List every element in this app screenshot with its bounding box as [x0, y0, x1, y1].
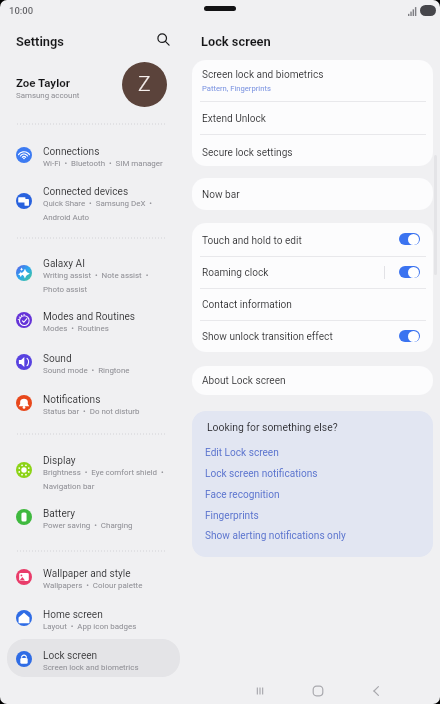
staticText: Edit Lock screen: [205, 447, 279, 459]
button[interactable]: Modes and Routines: [7, 300, 180, 338]
staticText: About Lock screen: [202, 375, 286, 387]
staticText: Looking for something else?: [207, 421, 338, 433]
staticText: Power saving • Charging: [43, 521, 133, 530]
staticText: Home screen: [43, 609, 103, 621]
staticText: Z: [138, 72, 151, 97]
staticText: Contact information: [202, 299, 292, 311]
button[interactable]: Connected devices: [7, 175, 180, 225]
button[interactable]: Battery: [7, 497, 180, 535]
button[interactable]: Connections: [7, 135, 180, 173]
staticText: Galaxy AI: [43, 258, 85, 270]
staticText: Quick Share • Samsung DeX • Android Auto: [43, 199, 152, 222]
button[interactable]: Touch and hold to edit: [399, 233, 420, 245]
button[interactable]: Display: [7, 444, 180, 494]
staticText: Extend Unlock: [202, 113, 266, 125]
staticText: Lock screen notifications: [205, 468, 318, 480]
staticText: Battery: [43, 508, 76, 520]
button[interactable]: Recents: [242, 676, 278, 704]
staticText: Display: [43, 455, 76, 467]
button[interactable]: Show alerting notifications only: [195, 525, 430, 544]
button[interactable]: Secure lock settings: [192, 138, 433, 166]
staticText: Writing assist • Note assist • Photo ass…: [43, 271, 149, 294]
button[interactable]: Edit Lock screen: [195, 442, 430, 461]
staticText: Modes • Routines: [43, 324, 109, 333]
staticText: Sound: [43, 353, 72, 365]
button[interactable]: Touch and hold to edit: [192, 226, 433, 258]
button[interactable]: Wallpaper and style: [7, 557, 180, 595]
button[interactable]: Home: [300, 676, 336, 704]
button[interactable]: Face recognition: [195, 484, 430, 503]
staticText: Fingerprints: [205, 510, 259, 522]
staticText: Lock screen: [201, 34, 271, 49]
button[interactable]: Screen lock and biometrics: [192, 60, 433, 101]
staticText: Screen lock and biometrics: [202, 69, 324, 81]
button[interactable]: About Lock screen: [192, 366, 433, 395]
staticText: Roaming clock: [202, 267, 269, 279]
staticText: Brightness • Eye comfort shield • Naviga…: [43, 468, 164, 491]
button[interactable]: Roaming clock: [192, 258, 433, 290]
button[interactable]: Notifications: [7, 383, 180, 421]
staticText: Now bar: [202, 189, 240, 201]
button[interactable]: Now bar: [192, 180, 433, 210]
staticText: Touch and hold to edit: [202, 235, 302, 247]
staticText: Settings: [16, 34, 64, 49]
staticText: Connected devices: [43, 186, 129, 198]
staticText: Lock screen: [43, 650, 98, 662]
staticText: 10:00: [9, 5, 34, 16]
staticText: Connections: [43, 146, 100, 158]
staticText: Show unlock transition effect: [202, 331, 333, 343]
staticText: Sound mode • Ringtone: [43, 366, 130, 375]
staticText: Wallpaper and style: [43, 568, 131, 580]
button[interactable]: Search: [152, 28, 174, 50]
staticText: Status bar • Do not disturb: [43, 407, 140, 416]
button[interactable]: Zoe Taylor: [0, 62, 188, 108]
staticText: Secure lock settings: [202, 147, 293, 159]
staticText: Samsung account: [16, 91, 80, 100]
staticText: Layout • App icon badges: [43, 622, 137, 631]
staticText: Notifications: [43, 394, 101, 406]
button[interactable]: Contact information: [192, 290, 433, 322]
button[interactable]: Home screen: [7, 598, 180, 636]
staticText: Wallpapers • Colour palette: [43, 581, 143, 590]
button[interactable]: Fingerprints: [195, 505, 430, 524]
button[interactable]: Lock screen: [7, 639, 180, 677]
button[interactable]: Roaming clock: [399, 266, 420, 278]
button[interactable]: Lock screen notifications: [195, 463, 430, 482]
button[interactable]: Galaxy AI: [7, 247, 180, 297]
staticText: Show alerting notifications only: [205, 530, 346, 542]
button[interactable]: Extend Unlock: [192, 104, 433, 136]
button[interactable]: Show unlock transition effect: [192, 322, 433, 352]
staticText: Screen lock and biometrics: [43, 663, 139, 672]
button[interactable]: Back: [358, 676, 394, 704]
staticText: Face recognition: [205, 489, 280, 501]
staticText: Zoe Taylor: [16, 76, 70, 89]
button[interactable]: Show unlock transition effect: [399, 330, 420, 342]
staticText: Modes and Routines: [43, 311, 136, 323]
staticText: Wi-Fi • Bluetooth • SIM manager: [43, 159, 163, 168]
button[interactable]: Sound: [7, 342, 180, 380]
staticText: Pattern, Fingerprints: [202, 84, 271, 93]
